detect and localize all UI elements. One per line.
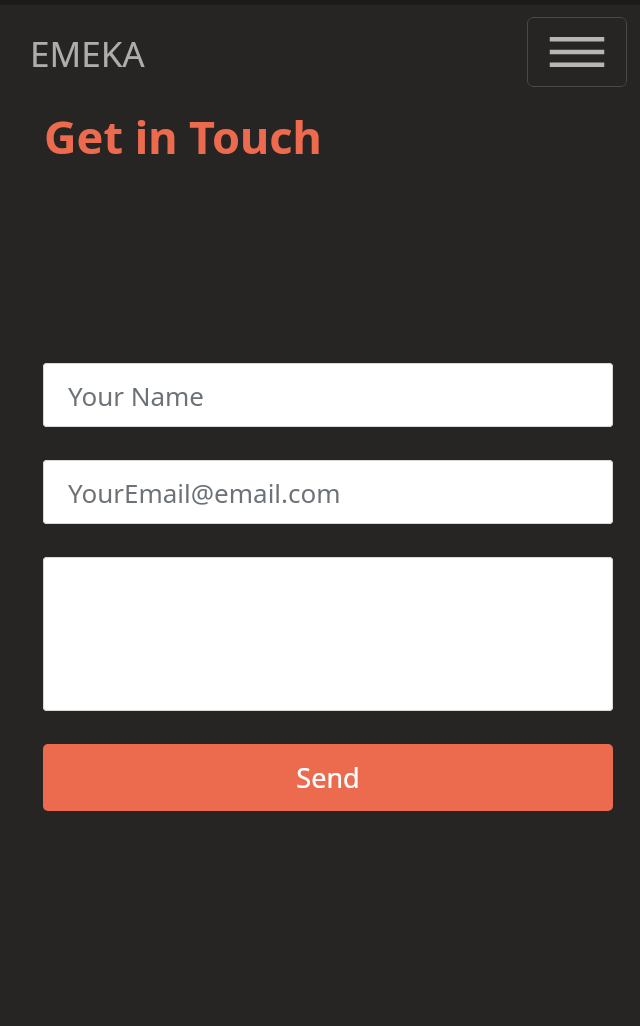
staticText: Get in Touch [44, 106, 322, 167]
button[interactable]: YourEmail@email.com [43, 460, 613, 524]
button[interactable]: Send [43, 744, 613, 811]
button[interactable]: Your Name [43, 363, 613, 427]
staticText: YourEmail@email.com [68, 475, 341, 510]
button[interactable]: Open navigation menu [527, 17, 627, 87]
staticText: Your Name [68, 378, 205, 413]
button[interactable]: Your message [43, 557, 613, 711]
staticText: Send [296, 759, 360, 796]
staticText: EMEKA [30, 30, 145, 78]
